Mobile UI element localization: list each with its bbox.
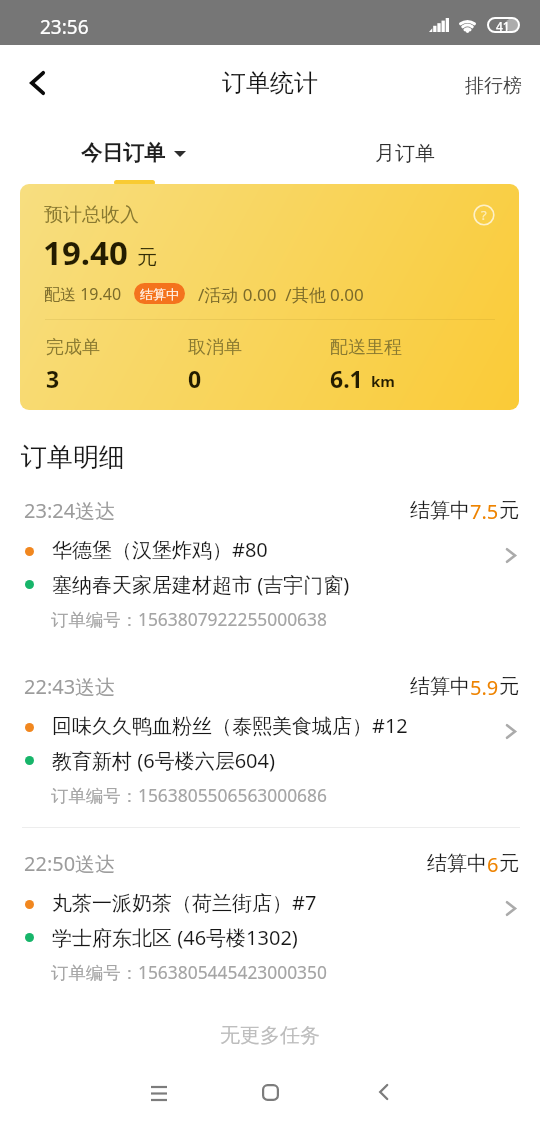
staticText: 排行榜: [465, 74, 522, 98]
staticText: 5.9: [470, 674, 499, 701]
staticText: 教育新村 (6号楼六层604): [52, 747, 275, 774]
staticText: /活动 0.00 /其他 0.00: [198, 283, 364, 306]
staticText: km: [371, 371, 395, 391]
button[interactable]: Home: [249, 1071, 291, 1113]
staticText: 丸茶一派奶茶（荷兰街店）#7: [52, 889, 317, 916]
button[interactable]: Recent apps: [138, 1071, 180, 1113]
staticText: 6.1: [330, 363, 363, 394]
staticText: 订单编号：1563805506563000686: [51, 783, 327, 807]
staticText: 无更多任务: [220, 1023, 320, 1048]
staticText: 22:50送达: [24, 850, 116, 877]
staticText: 19.40: [43, 230, 128, 275]
button[interactable]: Help: [473, 204, 495, 226]
button[interactable]: 月订单: [270, 120, 540, 184]
staticText: 配送 19.40: [44, 283, 122, 305]
staticText: 回味久久鸭血粉丝（泰熙美食城店）#12: [52, 712, 408, 739]
staticText: 元: [499, 674, 519, 699]
staticText: 7.5: [470, 498, 499, 525]
button[interactable]: Back: [362, 1071, 404, 1113]
staticText: 学士府东北区 (46号楼1302): [52, 924, 298, 951]
button[interactable]: 结算中: [134, 283, 185, 304]
staticText: 6: [487, 851, 499, 878]
staticText: 月订单: [375, 141, 435, 166]
staticText: 元: [499, 498, 519, 523]
button[interactable]: 23:24送达: [0, 490, 540, 662]
button[interactable]: 排行榜: [445, 59, 540, 110]
staticText: 41: [496, 18, 510, 34]
staticText: 订单编号：1563805445423000350: [51, 960, 327, 984]
staticText: 元: [499, 851, 519, 876]
staticText: 结算中: [140, 286, 179, 302]
staticText: 3: [46, 363, 60, 394]
staticText: 元: [137, 245, 157, 270]
button[interactable]: 22:43送达: [0, 666, 540, 838]
staticText: 华德堡（汉堡炸鸡）#80: [52, 536, 268, 563]
staticText: 结算中: [427, 851, 487, 876]
staticText: ?: [481, 206, 487, 224]
staticText: 0: [188, 363, 202, 394]
staticText: 订单统计: [222, 68, 318, 98]
staticText: 订单明细: [21, 441, 125, 474]
staticText: 22:43送达: [24, 673, 116, 700]
staticText: 今日订单: [81, 140, 165, 166]
staticText: 订单编号：1563807922255000638: [51, 607, 327, 631]
staticText: 取消单: [188, 336, 242, 359]
button[interactable]: 今日订单: [0, 120, 270, 184]
staticText: 塞纳春天家居建材超市 (吉宇门窗): [52, 571, 350, 598]
staticText: 结算中: [410, 498, 470, 523]
staticText: 完成单: [46, 336, 100, 359]
staticText: 结算中: [410, 674, 470, 699]
staticText: 23:56: [40, 14, 89, 40]
staticText: 预计总收入: [44, 203, 139, 227]
staticText: 23:24送达: [24, 497, 116, 524]
staticText: 配送里程: [330, 336, 402, 359]
button[interactable]: 22:50送达: [0, 843, 540, 1015]
button[interactable]: Back: [6, 48, 68, 118]
